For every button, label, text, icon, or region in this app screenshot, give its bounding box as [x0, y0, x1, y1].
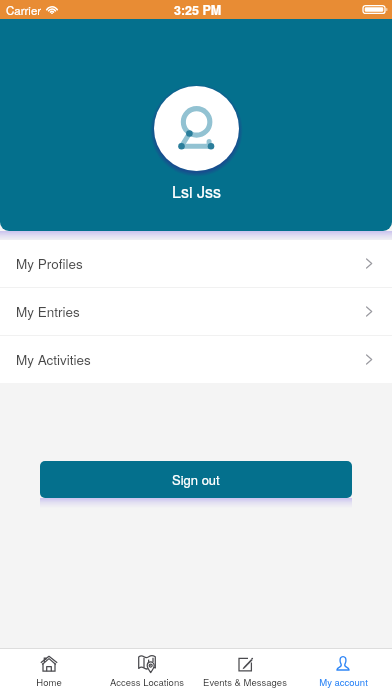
- staticText: Home: [36, 675, 62, 689]
- button[interactable]: Events & Messages: [196, 649, 294, 696]
- staticText: My Activities: [16, 350, 91, 369]
- button[interactable]: Sign out: [40, 461, 352, 498]
- button[interactable]: My Activities: [0, 336, 392, 383]
- other: Events & Messages: [236, 655, 254, 673]
- button[interactable]: Home: [0, 649, 98, 696]
- staticText: My Profiles: [16, 254, 83, 273]
- staticText: My Entries: [16, 302, 80, 321]
- button[interactable]: My account: [294, 649, 392, 696]
- button[interactable]: My Profiles: [0, 240, 392, 287]
- staticText: Carrier: [6, 2, 42, 18]
- staticText: Events & Messages: [203, 675, 287, 689]
- button[interactable]: My Entries: [0, 288, 392, 335]
- button[interactable]: Access Locations: [98, 649, 196, 696]
- staticText: Lsi Jss: [172, 180, 221, 203]
- other: My account: [334, 655, 352, 673]
- other: Home: [40, 655, 58, 673]
- staticText: My account: [319, 675, 368, 689]
- staticText: Sign out: [172, 470, 220, 489]
- staticText: Access Locations: [110, 675, 184, 689]
- staticText: 3:25 PM: [174, 1, 222, 19]
- other: Access Locations: [138, 655, 156, 673]
